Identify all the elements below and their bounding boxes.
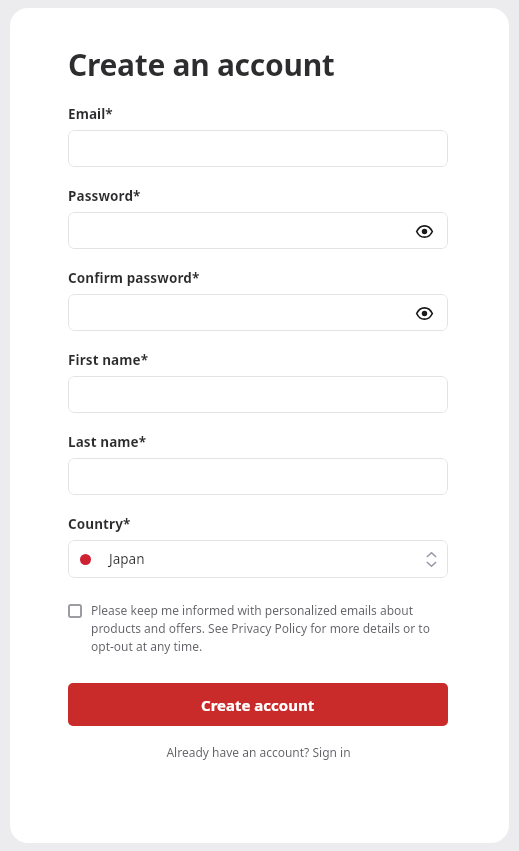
button[interactable]: Show password (68, 212, 448, 249)
staticText: Create an account (68, 44, 335, 85)
button[interactable]: Show password (411, 218, 437, 244)
staticText: Confirm password* (68, 269, 200, 287)
staticText: First name* (68, 351, 149, 369)
button[interactable]: Create account (68, 683, 448, 726)
staticText: Create account (201, 695, 315, 715)
staticText: Country* (68, 515, 131, 533)
staticText: Email* (68, 105, 113, 123)
button[interactable] (68, 376, 448, 413)
button[interactable]: Show confirm password (411, 300, 437, 326)
staticText: Last name* (68, 433, 147, 451)
button[interactable]: Japan (68, 540, 448, 578)
staticText: Japan (109, 550, 426, 568)
button[interactable]: Show confirm password (68, 294, 448, 331)
button[interactable]: Please keep me informed with personalize… (68, 602, 448, 655)
staticText: Already have an account? Sign in (166, 744, 351, 760)
button[interactable] (68, 458, 448, 495)
staticText: Please keep me informed with personalize… (91, 602, 448, 655)
button[interactable] (68, 130, 448, 167)
button[interactable]: Already have an account? Sign in (68, 744, 448, 760)
staticText: Password* (68, 187, 141, 205)
